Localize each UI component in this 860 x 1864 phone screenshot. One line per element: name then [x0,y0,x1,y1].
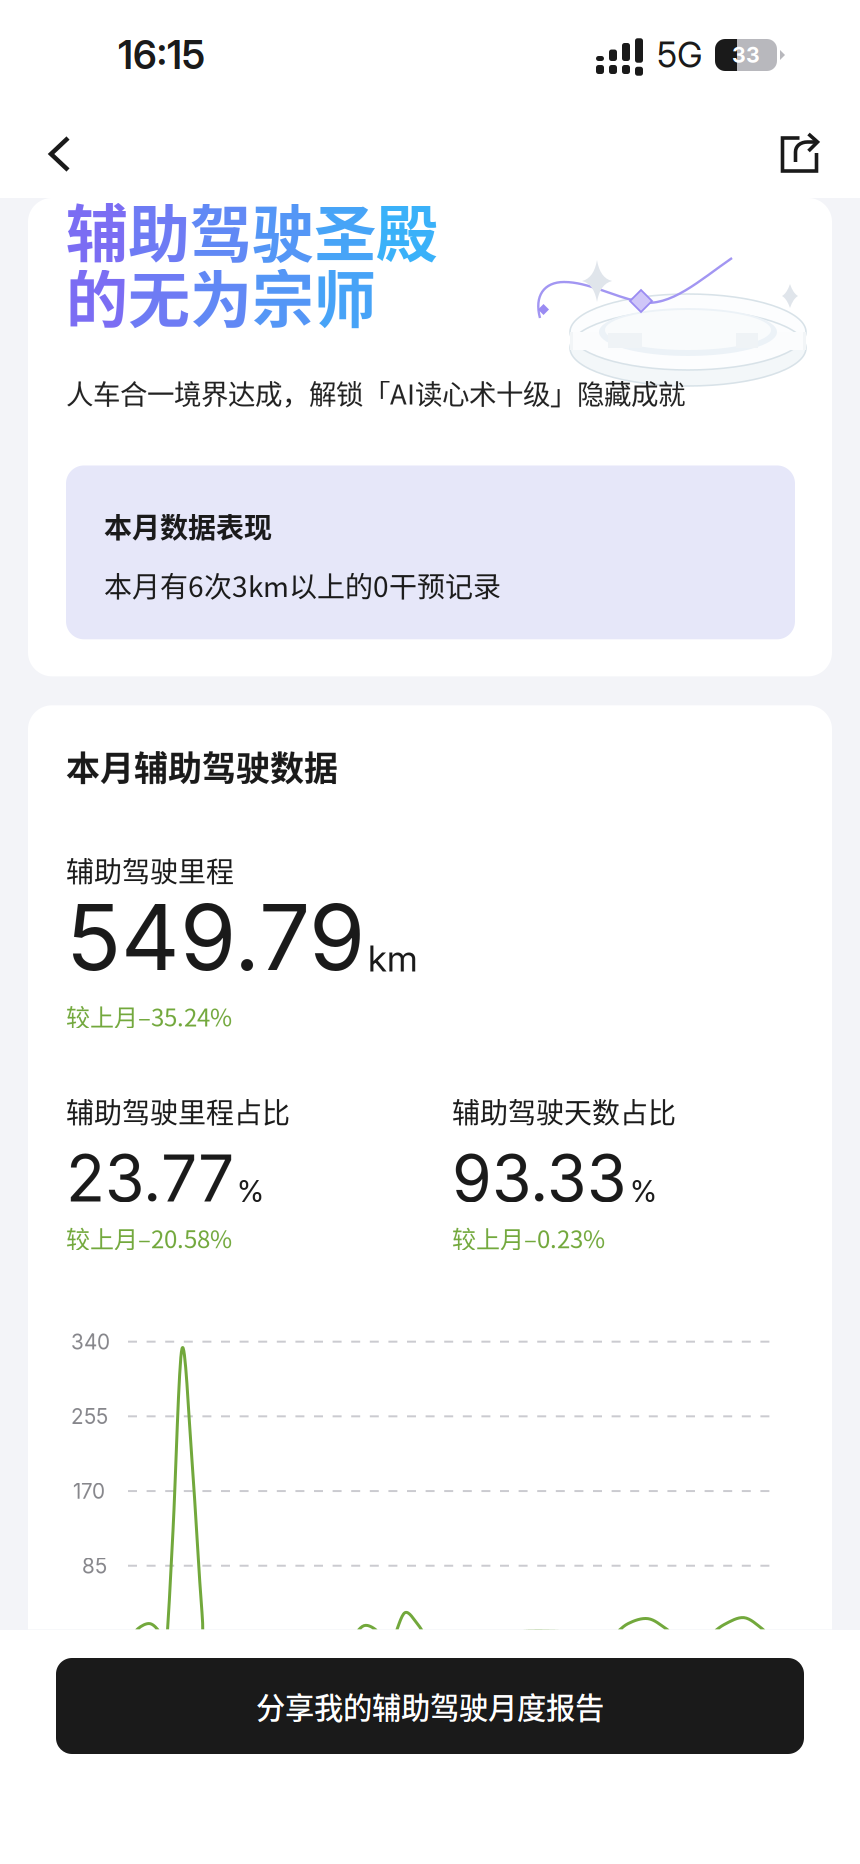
staticText: 辅助驾驶里程占比 [66,1095,290,1127]
staticText: 较上月–0.23% [452,1224,605,1252]
staticText: 辅 [66,194,128,266]
staticText: 5G [657,38,703,72]
staticText: 辅助驾驶天数占比 [452,1095,676,1127]
staticText: 分享我的辅助驾驶月度报告 [256,1689,604,1723]
staticText: 本月有6次3km以上的0干预记录 [104,569,501,601]
staticText: 师 [314,260,376,332]
staticText: 549.79 [66,892,365,982]
staticText: 较上月–20.58% [66,1224,232,1252]
staticText: 170 [73,1481,105,1502]
staticText: 殿 [376,194,438,266]
staticText: 为 [190,260,252,332]
staticText: 较上月–35.24% [66,1002,232,1030]
staticText: 的 [66,260,128,332]
staticText: 辅助驾驶里程 [66,854,234,886]
button[interactable]: 分享我的辅助驾驶月度报告 [56,1658,804,1754]
staticText: 驾 [190,194,252,266]
staticText: 宗 [252,260,314,332]
staticText: 85 [82,1556,107,1576]
staticText: 助 [128,194,190,266]
staticText: 本月数据表现 [104,509,272,542]
staticText: 33 [732,42,760,68]
staticText: 驶 [252,194,314,266]
staticText: 本月辅助驾驶数据 [66,746,338,786]
staticText: % [237,1177,264,1206]
button[interactable]: Share [762,110,838,198]
staticText: 圣 [314,194,376,266]
staticText: km [368,941,418,976]
staticText: 93.33 [452,1146,627,1210]
staticText: 23.77 [66,1146,234,1210]
staticText: 人车合一境界达成，解锁「AI读心术十级」隐藏成就 [66,377,685,408]
staticText: 255 [71,1406,108,1427]
button[interactable]: Back [22,110,98,198]
staticText: 340 [71,1332,110,1352]
staticText: 无 [128,260,190,332]
staticText: % [630,1177,657,1206]
staticText: 16:15 [118,36,205,74]
